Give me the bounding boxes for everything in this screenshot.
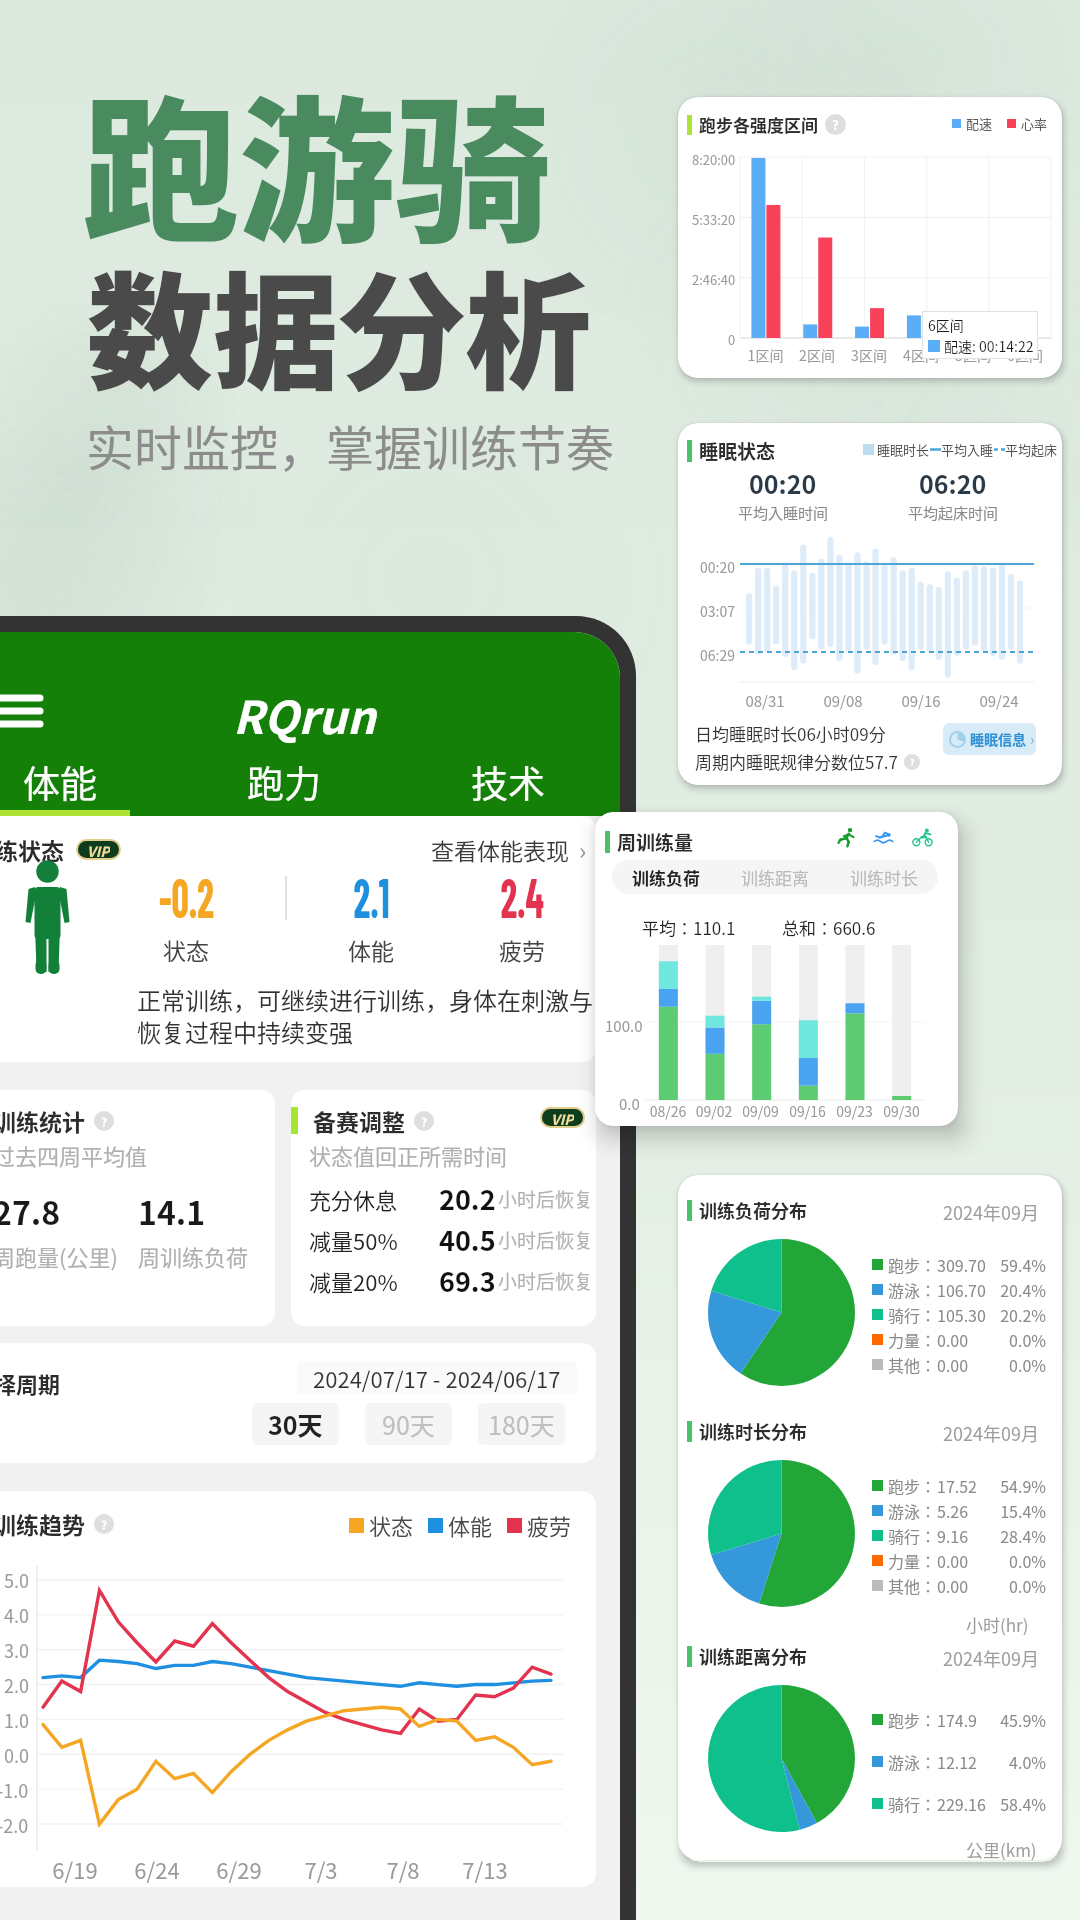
staticText: 周训练量: [617, 828, 694, 856]
staticText: 训练负荷: [632, 865, 700, 890]
button[interactable]: 查看体能表现: [431, 832, 587, 867]
staticText: 15.4%: [994, 1499, 1046, 1522]
staticText: 54.9%: [994, 1474, 1046, 1497]
staticText: 180天: [488, 1406, 555, 1442]
button[interactable]: 周训练量: [595, 812, 958, 1126]
staticText: 20.4%: [994, 1278, 1046, 1301]
staticText: 08/26: [645, 1101, 691, 1121]
button[interactable]: 训练统计: [0, 1090, 275, 1326]
staticText: 309.70: [937, 1253, 986, 1276]
staticText: 配速: 00:14:22: [944, 336, 1034, 356]
button[interactable]: 训练时长: [829, 860, 938, 894]
button[interactable]: Cycling: [912, 827, 933, 848]
button[interactable]: Running: [836, 827, 857, 848]
staticText: 03:07: [700, 601, 735, 621]
staticText: 45.9%: [994, 1708, 1046, 1731]
button[interactable]: 跑步各强度区间: [678, 97, 1062, 378]
staticText: 平均入睡时间: [738, 502, 829, 524]
staticText: 骑行：: [888, 1303, 937, 1326]
staticText: 公里(km): [966, 1837, 1037, 1860]
staticText: 正常训练，可继续进行训练，身体在刺激与 恢复过程中持续变强: [137, 982, 593, 1049]
staticText: 2024年09月: [943, 1645, 1039, 1671]
staticText: 5:33:20: [692, 210, 736, 229]
staticText: 5.26: [937, 1499, 969, 1522]
staticText: 训练距离分布: [699, 1643, 807, 1669]
staticText: 0.0%: [994, 1328, 1046, 1351]
staticText: 17.52: [937, 1474, 977, 1497]
staticText: 09/16: [784, 1101, 831, 1121]
staticText: 跑步：: [888, 1474, 937, 1497]
button[interactable]: 训练距离: [720, 860, 829, 894]
staticText: 6/29: [198, 1853, 280, 1885]
staticText: 09/08: [804, 690, 882, 712]
staticText: 2区间: [791, 345, 843, 365]
staticText: 59.4%: [994, 1253, 1046, 1276]
staticText: 27.8: [0, 1188, 61, 1234]
button[interactable]: 训练状态: [0, 816, 596, 1062]
staticText: 实时监控，掌握训练节奏: [86, 410, 615, 480]
staticText: VIP: [87, 841, 110, 858]
staticText: 查看体能表现: [431, 833, 569, 866]
staticText: 0.0: [4, 1742, 29, 1768]
staticText: 8:20:00: [692, 150, 736, 169]
button[interactable]: 备赛调整: [291, 1090, 596, 1326]
button[interactable]: 体能: [0, 752, 172, 812]
staticText: 状态: [163, 933, 209, 966]
staticText: 7/13: [444, 1853, 526, 1885]
staticText: 7/3: [280, 1853, 362, 1885]
staticText: 00:20: [749, 465, 817, 501]
staticText: 6/24: [116, 1853, 198, 1885]
staticText: 游泳：: [888, 1499, 937, 1522]
staticText: ›: [579, 832, 587, 867]
staticText: 106.70: [937, 1278, 986, 1301]
staticText: 00:20: [700, 557, 735, 577]
staticText: 睡眠状态: [699, 437, 776, 465]
button[interactable]: 跑力: [172, 752, 396, 812]
staticText: 状态值回正所需时间: [309, 1139, 508, 1171]
button[interactable]: 30天: [252, 1403, 339, 1445]
staticText: 小时后恢复: [498, 1267, 594, 1295]
staticText: 小时后恢复: [498, 1185, 594, 1213]
staticText: 疲劳: [499, 933, 545, 966]
staticText: ?: [421, 1113, 428, 1130]
button[interactable]: Menu: [0, 690, 45, 732]
staticText: 7/8: [362, 1853, 444, 1885]
staticText: 30天: [268, 1406, 323, 1442]
staticText: 数据分析: [87, 233, 591, 415]
staticText: 09/30: [878, 1101, 925, 1121]
button[interactable]: 180天: [478, 1403, 565, 1445]
staticText: 09/02: [691, 1101, 737, 1121]
button[interactable]: 训练负荷: [612, 860, 720, 894]
staticText: 58.4%: [994, 1792, 1046, 1815]
staticText: 229.16: [937, 1792, 986, 1815]
staticText: 跑力: [247, 755, 321, 809]
staticText: 0: [728, 330, 736, 349]
button[interactable]: 90天: [365, 1403, 452, 1445]
staticText: 力量：: [888, 1549, 937, 1572]
staticText: 174.9: [937, 1708, 977, 1731]
staticText: 40.5: [439, 1220, 496, 1259]
staticText: VIP: [551, 1109, 574, 1126]
staticText: 过去四周平均值: [0, 1139, 148, 1171]
staticText: 0.0%: [994, 1574, 1046, 1597]
staticText: 训练负荷分布: [699, 1197, 807, 1223]
button[interactable]: 睡眠信息: [943, 723, 1036, 755]
staticText: 体能: [348, 933, 394, 966]
button[interactable]: 2024/07/17 - 2024/06/17: [297, 1361, 577, 1394]
button[interactable]: Swimming: [873, 827, 894, 848]
staticText: 状态: [369, 1509, 414, 1541]
staticText: 5区间: [947, 345, 999, 365]
staticText: 平均：110.1: [642, 915, 782, 940]
staticText: RQrun: [233, 682, 376, 747]
button[interactable]: 睡眠状态: [678, 423, 1062, 785]
staticText: 2.4: [500, 862, 545, 929]
staticText: 06:29: [700, 645, 735, 665]
staticText: 跑步各强度区间: [699, 112, 818, 137]
button[interactable]: 选择周期: [0, 1343, 596, 1463]
staticText: 力量：: [888, 1328, 937, 1351]
button[interactable]: 训练负荷分布: [678, 1175, 1062, 1860]
button[interactable]: 技术: [396, 752, 620, 812]
button[interactable]: 训练趋势: [0, 1491, 596, 1887]
staticText: 体能: [448, 1509, 493, 1541]
staticText: 1.0: [4, 1707, 29, 1733]
